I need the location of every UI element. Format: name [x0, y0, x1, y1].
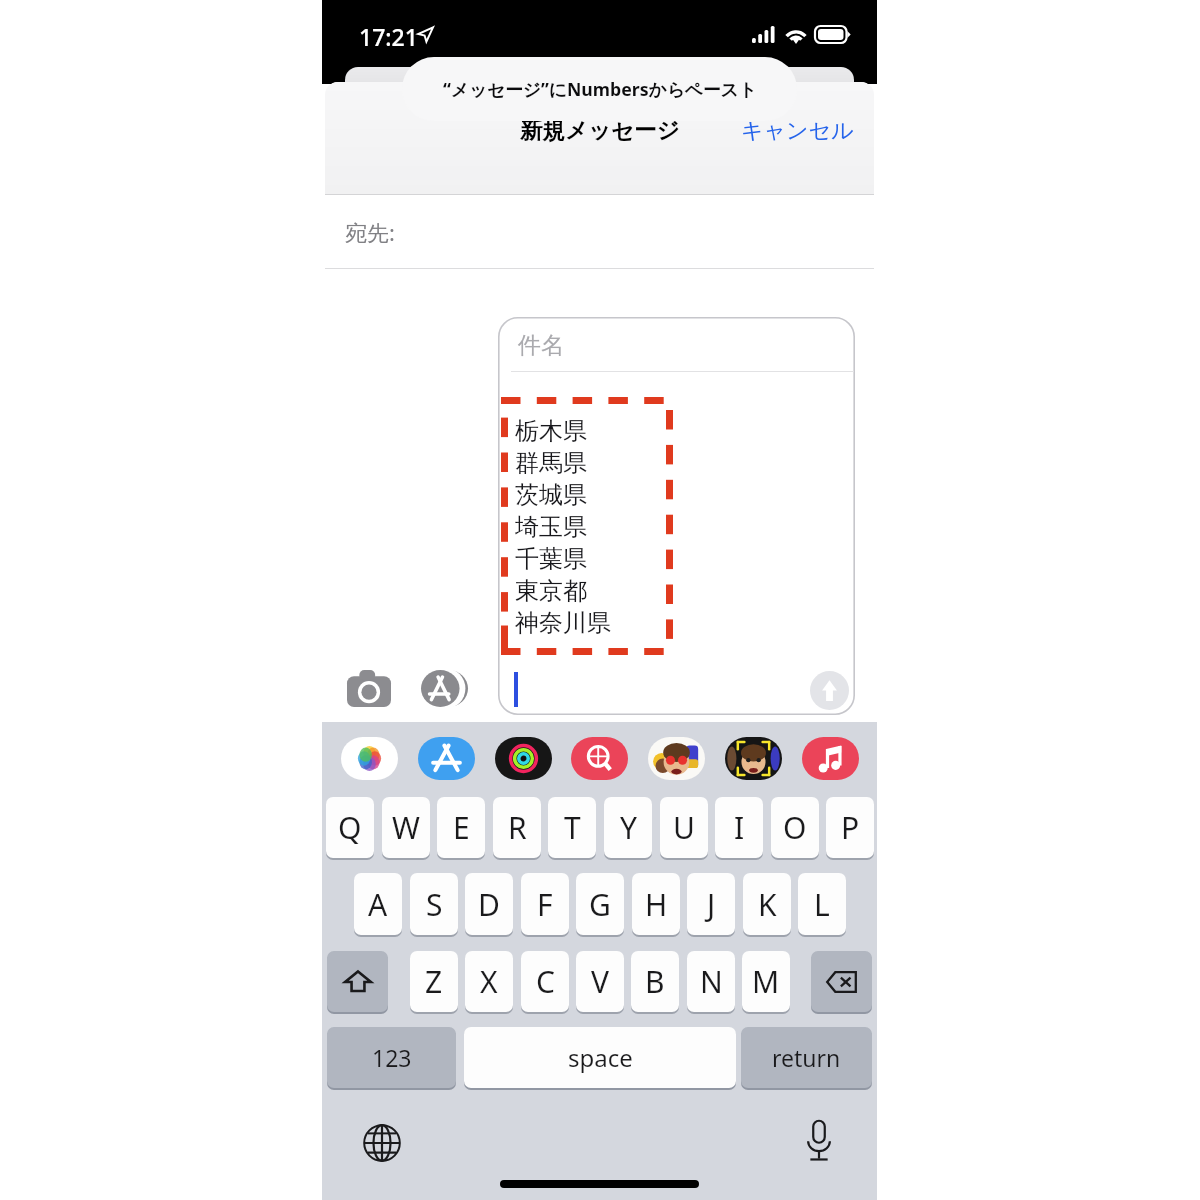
button[interactable]: Send [810, 671, 849, 710]
button[interactable]: R [493, 797, 541, 858]
button[interactable]: App 1 [418, 737, 475, 780]
staticText: O [783, 807, 807, 848]
staticText: L [814, 884, 830, 925]
staticText: 17:21 [359, 21, 418, 52]
button[interactable]: Space [464, 1027, 736, 1088]
staticText: 件名 [518, 331, 564, 360]
button[interactable]: Z [410, 951, 458, 1012]
button[interactable]: J [687, 873, 735, 935]
button[interactable]: M [742, 951, 790, 1012]
button[interactable]: I [715, 797, 763, 858]
staticText: T [564, 807, 581, 848]
staticText: V [591, 961, 609, 1002]
staticText: 東京都 [515, 576, 587, 606]
button[interactable]: O [771, 797, 819, 858]
button[interactable]: L [798, 873, 846, 935]
button[interactable]: W [382, 797, 430, 858]
staticText: M [752, 961, 780, 1002]
staticText: 神奈川県 [515, 608, 611, 638]
button[interactable]: B [631, 951, 679, 1012]
button[interactable]: T [548, 797, 596, 858]
staticText: F [537, 884, 553, 925]
staticText: E [453, 807, 470, 848]
staticText: C [536, 961, 555, 1002]
staticText: Y [620, 807, 637, 848]
staticText: A [368, 884, 388, 925]
staticText: “メッセージ”にNumbersからペースト [443, 77, 757, 101]
staticText: 千葉県 [515, 544, 587, 574]
button[interactable]: Change keyboard [363, 1124, 401, 1162]
staticText: space [568, 1041, 633, 1074]
button[interactable]: Q [326, 797, 374, 858]
button[interactable]: X [465, 951, 513, 1012]
button[interactable]: App 5 [725, 737, 782, 780]
button[interactable]: N [687, 951, 735, 1012]
staticText: N [700, 961, 723, 1002]
button[interactable]: G [576, 873, 624, 935]
button[interactable]: App 3 [571, 737, 628, 780]
staticText: P [841, 807, 860, 848]
button[interactable]: App 2 [495, 737, 552, 780]
button[interactable]: V [576, 951, 624, 1012]
button[interactable]: Camera [347, 670, 391, 707]
button[interactable]: App Store [421, 670, 468, 707]
staticText: 123 [372, 1042, 412, 1073]
button[interactable]: Numbers [327, 1027, 456, 1088]
button[interactable]: H [632, 873, 680, 935]
staticText: 宛先: [345, 217, 395, 247]
button[interactable]: F [521, 873, 569, 935]
staticText: U [673, 807, 695, 848]
button[interactable]: K [743, 873, 791, 935]
staticText: 茨城県 [515, 480, 587, 510]
button[interactable]: App 0 [341, 737, 398, 780]
button[interactable]: Backspace [811, 951, 872, 1012]
staticText: 新規メッセージ [520, 116, 680, 144]
staticText: H [645, 884, 668, 925]
button[interactable]: キャンセル [735, 111, 860, 151]
button[interactable]: Y [604, 797, 652, 858]
button[interactable]: S [410, 873, 458, 935]
staticText: X [480, 961, 498, 1002]
staticText: 埼玉県 [515, 512, 587, 542]
staticText: return [772, 1042, 841, 1073]
button[interactable]: App 6 [802, 737, 859, 780]
staticText: Q [338, 807, 362, 848]
staticText: R [508, 807, 527, 848]
button[interactable]: U [660, 797, 708, 858]
staticText: B [645, 961, 665, 1002]
staticText: 栃木県 [515, 416, 587, 446]
button[interactable]: Dictation [803, 1119, 835, 1163]
staticText: 群馬県 [515, 448, 587, 478]
button[interactable]: D [465, 873, 513, 935]
button[interactable]: Return [741, 1027, 872, 1088]
staticText: W [392, 807, 420, 848]
button[interactable]: App 4 [648, 737, 705, 780]
button[interactable]: A [354, 873, 402, 935]
staticText: K [758, 884, 777, 925]
button[interactable]: E [437, 797, 485, 858]
staticText: G [589, 884, 611, 925]
button[interactable]: Shift [327, 951, 388, 1012]
button[interactable]: P [826, 797, 874, 858]
staticText: I [734, 807, 745, 848]
staticText: Z [425, 961, 443, 1002]
staticText: J [707, 884, 716, 925]
staticText: S [426, 884, 443, 925]
staticText: キャンセル [741, 117, 854, 145]
button[interactable]: 宛先: [325, 195, 874, 268]
staticText: D [478, 884, 500, 925]
button[interactable]: C [521, 951, 569, 1012]
